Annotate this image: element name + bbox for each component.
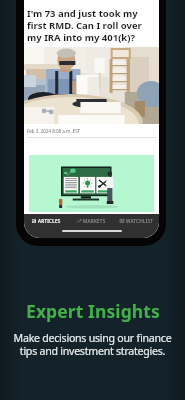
staticText: WATCHLIST — [126, 218, 154, 224]
staticText: Feb 3, 2024 8:08 a.m. EST — [27, 128, 81, 134]
staticText: I'm 73 and just took my first RMD. Can I… — [27, 7, 142, 44]
staticText: Make decisions using our finance tips an… — [0, 331, 185, 358]
button[interactable]: MARKETS — [69, 214, 114, 228]
button[interactable]: WATCHLIST — [114, 214, 159, 228]
staticText: ARTICLES — [38, 218, 61, 224]
button[interactable]: ARTICLES — [24, 214, 69, 228]
staticText: MARKETS — [83, 218, 106, 224]
staticText: Expert Insights — [26, 299, 160, 323]
